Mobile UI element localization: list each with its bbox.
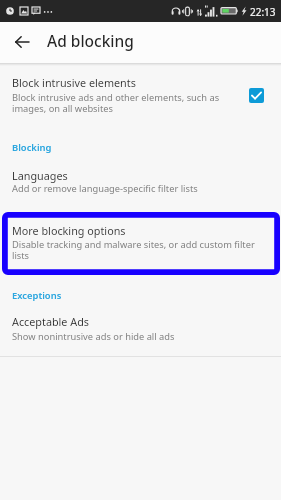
staticText: Show nonintrusive ads or hide all ads — [12, 330, 175, 343]
button[interactable]: More blocking options — [2, 212, 280, 275]
button[interactable]: Back — [5, 25, 38, 58]
staticText: Exceptions — [12, 289, 62, 302]
staticText: Block intrusive ads and other elements, … — [12, 91, 220, 114]
staticText: Block intrusive elements — [12, 75, 136, 90]
staticText: Languages — [12, 168, 68, 183]
staticText: Disable tracking and malware sites, or a… — [12, 238, 262, 261]
button[interactable]: Acceptable Ads — [0, 310, 281, 345]
staticText: Add or remove language-specific filter l… — [12, 182, 198, 195]
button[interactable]: Block intrusive elements, enabled — [249, 88, 264, 103]
staticText: Ad blocking — [47, 30, 134, 51]
staticText: 22:13 — [250, 5, 276, 19]
staticText: Acceptable Ads — [12, 314, 89, 329]
button[interactable]: Languages — [0, 164, 281, 198]
staticText: Blocking — [12, 141, 52, 154]
staticText: More blocking options — [12, 223, 126, 238]
button[interactable]: Block intrusive elements — [0, 68, 281, 118]
